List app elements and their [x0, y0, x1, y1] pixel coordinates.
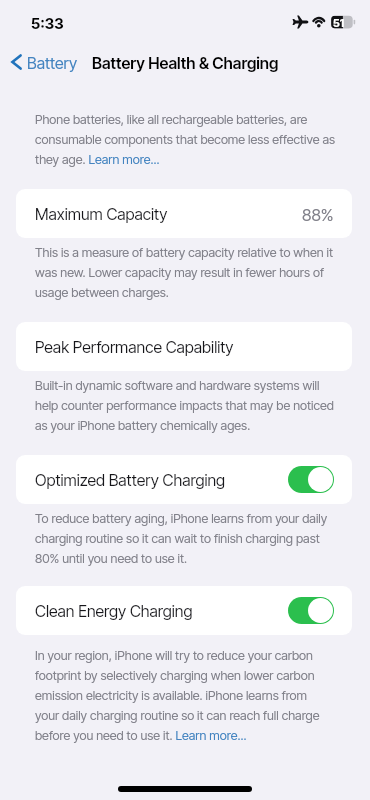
staticText: To reduce battery aging, iPhone learns f… — [35, 511, 336, 566]
staticText: Battery — [27, 53, 78, 72]
staticText: Battery Health & Charging — [92, 53, 279, 72]
button[interactable]: Maximum Capacity — [16, 189, 352, 238]
staticText: Clean Energy Charging — [35, 601, 193, 620]
staticText: Optimized Battery Charging — [35, 470, 226, 489]
staticText: 5:33 — [31, 14, 64, 32]
staticText: This is a measure of battery capacity re… — [35, 245, 336, 300]
staticText: Peak Performance Capability — [35, 337, 234, 356]
staticText: Maximum Capacity — [35, 204, 168, 223]
button[interactable]: Optimized Battery Charging — [288, 466, 334, 493]
staticText: In your region, iPhone will try to reduc… — [35, 648, 334, 743]
button[interactable]: Peak Performance Capability — [16, 322, 352, 371]
button[interactable]: Clean Energy Charging — [288, 597, 334, 624]
button[interactable]: Battery — [6, 44, 84, 80]
staticText: Phone batteries, like all rechargeable b… — [35, 112, 336, 167]
button[interactable]: Optimized Battery Charging — [16, 455, 352, 504]
button[interactable]: Clean Energy Charging — [16, 586, 352, 635]
staticText: Built-in dynamic software and hardware s… — [35, 378, 336, 433]
staticText: 51 — [333, 16, 345, 29]
staticText: 88% — [302, 205, 334, 225]
